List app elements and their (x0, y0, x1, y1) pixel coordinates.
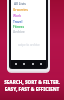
button[interactable]: Search (20, 60, 28, 68)
staticText: Fitness (13, 25, 24, 29)
button[interactable]: Sort (29, 60, 37, 68)
button[interactable]: All Lists (11, 1, 46, 7)
button[interactable]: Archive (11, 29, 46, 35)
button[interactable]: Settings (37, 60, 45, 68)
button[interactable]: Fitness (11, 24, 46, 30)
staticText: EASY, FAST & EFFICIENT (0, 86, 64, 92)
button[interactable]: Lists (12, 60, 20, 68)
staticText: swipe to archive (18, 43, 40, 47)
staticText: All Lists (14, 2, 26, 6)
staticText: Work (13, 14, 22, 18)
staticText: SEARCH, SORT & FILTER. (0, 79, 64, 85)
staticText: Groceries (13, 8, 28, 12)
staticText: Travel (13, 20, 23, 24)
button[interactable]: Work (11, 13, 46, 19)
staticText: Archive (13, 30, 25, 34)
button[interactable]: Groceries (11, 7, 46, 13)
button[interactable]: Travel (11, 19, 46, 25)
